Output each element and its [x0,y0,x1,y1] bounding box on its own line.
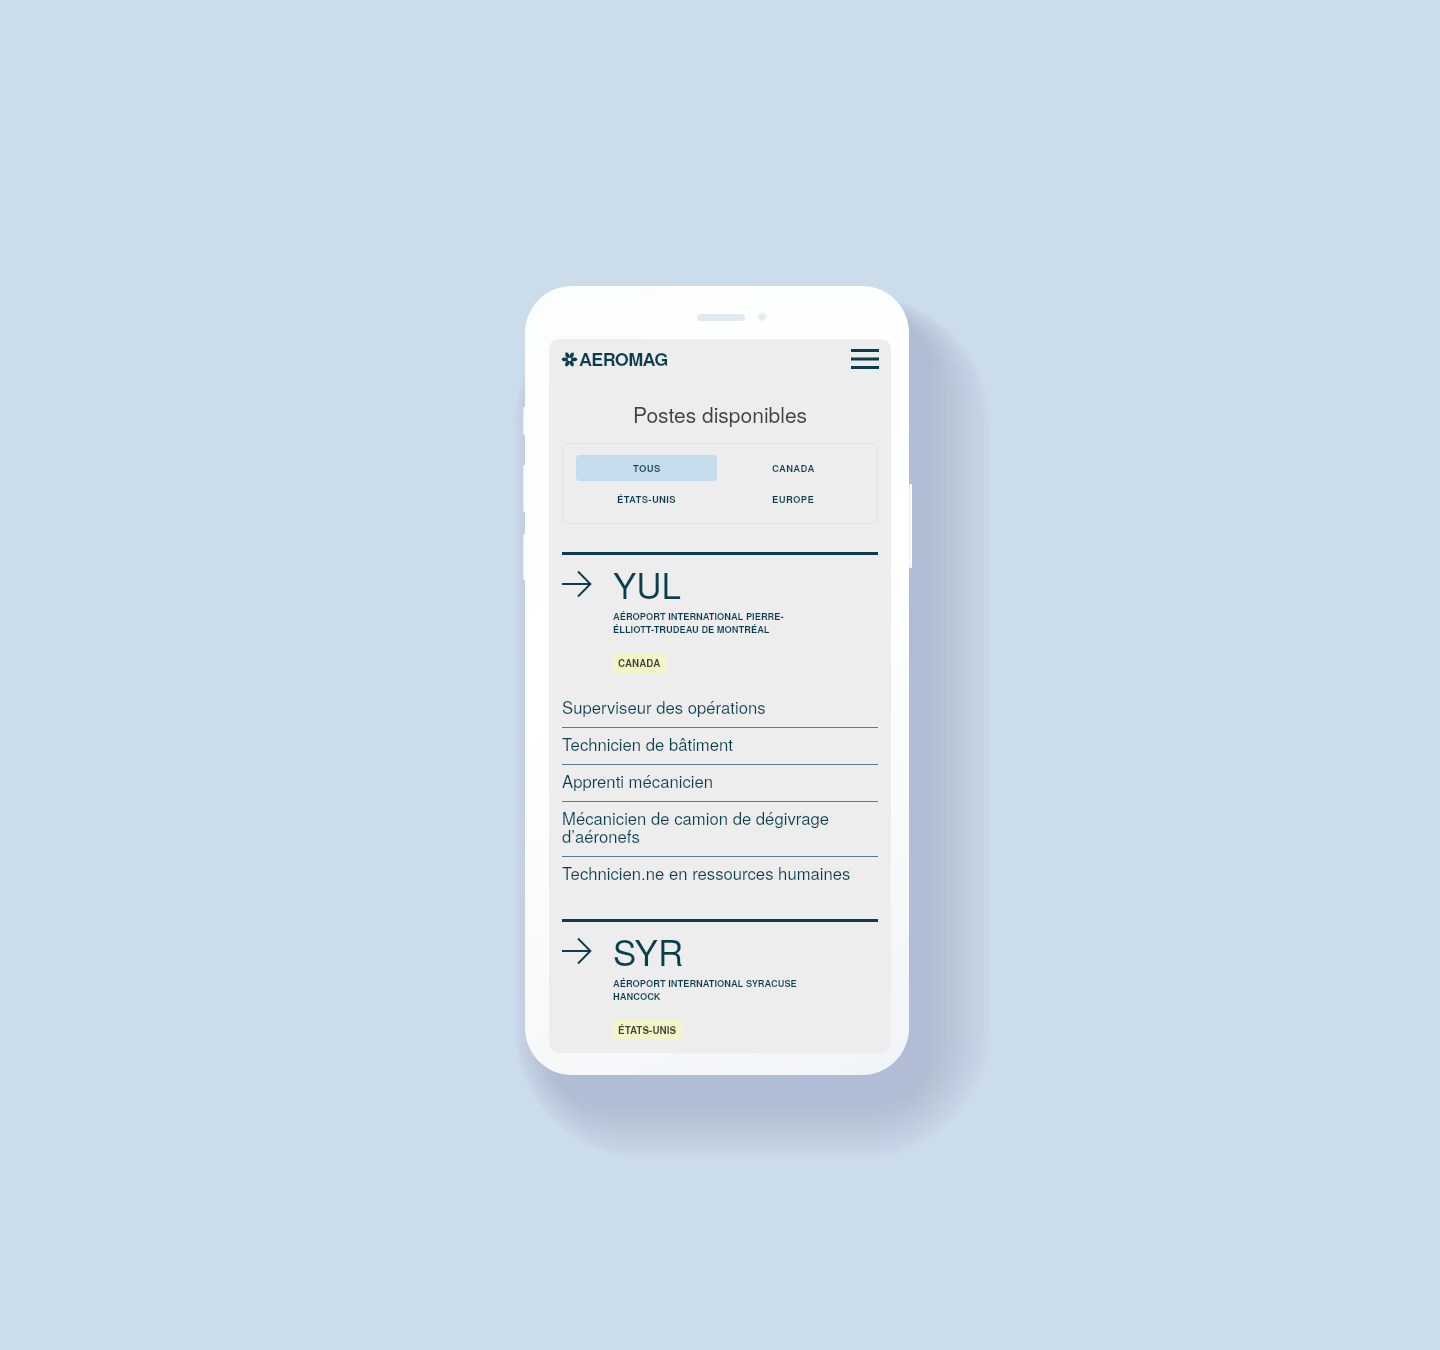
staticText: TOUS [633,461,661,475]
button[interactable]: CANADA [613,653,666,673]
button[interactable]: Apprenti mécanicien [562,769,878,806]
staticText: Technicien de bâtiment [562,732,733,756]
button[interactable]: EUROPE [723,486,864,512]
button[interactable]: AEROMAG [562,346,668,372]
button[interactable]: SYR [562,926,684,976]
staticText: Mécanicien de camion de dégivrage d’aéro… [562,806,830,848]
staticText: Superviseur des opérations [562,695,766,719]
staticText: YUL [613,559,682,609]
staticText: ÉTATS-UNIS [618,1023,677,1037]
staticText: AÉROPORT INTERNATIONAL PIERRE- ÉLLIOTT-T… [613,610,784,636]
button[interactable]: Technicien de bâtiment [562,732,878,769]
button[interactable]: CANADA [723,455,864,481]
button[interactable]: Technicien.ne en ressources humaines [562,861,878,885]
button[interactable]: Superviseur des opérations [562,695,878,732]
staticText: AÉROPORT INTERNATIONAL SYRACUSE HANCOCK [613,977,797,1003]
staticText: ÉTATS-UNIS [617,492,676,506]
button[interactable]: ÉTATS-UNIS [613,1020,682,1040]
staticText: Apprenti mécanicien [562,769,714,793]
button[interactable]: Menu [846,342,884,376]
staticText: AEROMAG [579,346,668,372]
staticText: CANADA [772,461,815,475]
staticText: EUROPE [772,492,815,506]
button[interactable]: YUL [562,559,682,609]
staticText: Postes disponibles [549,399,891,429]
staticText: SYR [613,926,684,976]
button[interactable]: TOUS [576,455,717,481]
staticText: Technicien.ne en ressources humaines [562,861,851,885]
button[interactable]: ÉTATS-UNIS [576,486,717,512]
button[interactable]: Mécanicien de camion de dégivrage d’aéro… [562,806,878,861]
staticText: CANADA [618,656,661,670]
